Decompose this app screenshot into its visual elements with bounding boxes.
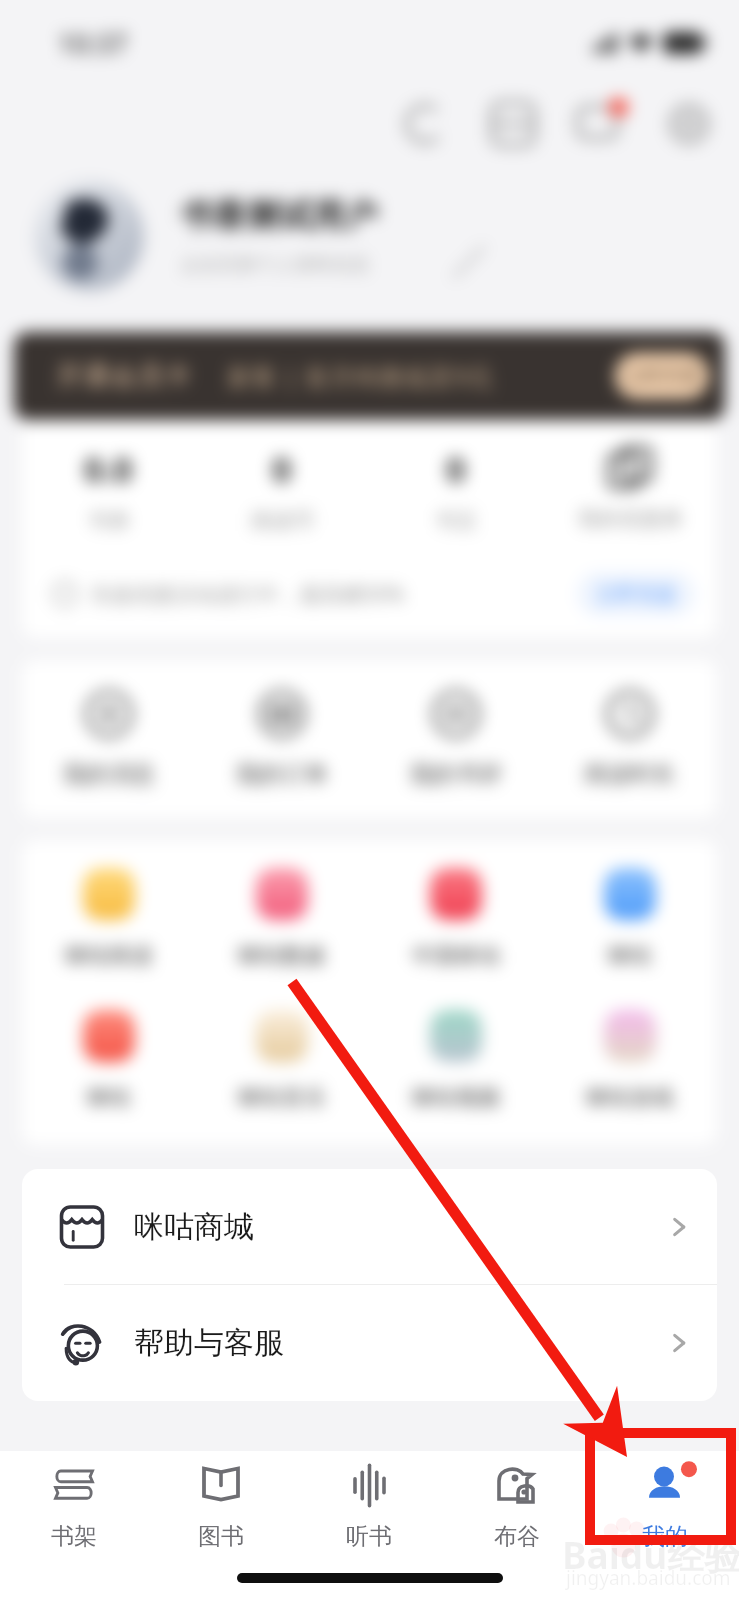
staticText: 我的: [642, 1522, 688, 1551]
staticText: 0.0: [84, 446, 133, 492]
staticText: 咪咕: [87, 1084, 131, 1112]
staticText: 我的书评: [410, 760, 502, 789]
button[interactable]: 咪咕视频: [369, 1010, 543, 1112]
button[interactable]: 咪咕音乐: [195, 1010, 369, 1112]
button[interactable]: 帮助与客服: [22, 1285, 717, 1401]
staticText: Baidu经验: [562, 1529, 739, 1580]
button[interactable]: 书架: [0, 1451, 147, 1555]
button[interactable]: 我的优惠券: [543, 448, 717, 532]
staticText: 布谷: [494, 1522, 540, 1551]
staticText: 书香测试用户: [180, 195, 378, 237]
staticText: 点击完善个人资料信息: [180, 253, 370, 277]
staticText: 咪咕阅读: [65, 942, 153, 970]
button[interactable]: Scan: [469, 86, 557, 162]
button[interactable]: 咪咕阅读: [22, 868, 195, 970]
staticText: 阅读币: [251, 508, 314, 534]
button[interactable]: Messages: [557, 86, 645, 162]
button[interactable]: 我的订单: [195, 690, 369, 789]
button[interactable]: 开通会员卡: [14, 332, 725, 420]
staticText: 中国移动: [412, 942, 500, 970]
staticText: 我的消息: [63, 760, 155, 789]
button[interactable]: 咪咕: [543, 868, 717, 970]
staticText: 书豆: [435, 508, 477, 534]
button[interactable]: 书香测试用户: [0, 162, 739, 310]
button[interactable]: 咪咕商城: [22, 1169, 717, 1284]
button[interactable]: 中国移动: [369, 868, 543, 970]
button[interactable]: 阅读时长: [543, 690, 717, 789]
button[interactable]: Night mode: [381, 86, 469, 162]
button[interactable]: 咪咕游戏: [543, 1010, 717, 1112]
button[interactable]: 我的书评: [369, 690, 543, 789]
staticText: 充值优惠活动进行中，最高赠30%: [90, 580, 405, 609]
staticText: 书券: [88, 508, 130, 534]
staticText: 阅读时长: [584, 760, 676, 789]
staticText: 开通会员卡: [56, 359, 191, 393]
staticText: 0: [272, 446, 292, 492]
button[interactable]: 布谷: [443, 1451, 591, 1555]
button[interactable]: 咪咕: [22, 1010, 195, 1112]
staticText: 咪咕游戏: [586, 1084, 674, 1112]
button[interactable]: 充值优惠活动进行中，最高赠30%: [22, 550, 717, 638]
button[interactable]: Settings: [645, 86, 733, 162]
staticText: 新客 | 首月特惠低至9元: [227, 359, 494, 393]
staticText: 0: [446, 446, 466, 492]
button[interactable]: 图书: [147, 1451, 295, 1555]
staticText: jingyan.baidu.com: [566, 1565, 731, 1591]
staticText: 立即开通: [626, 365, 698, 388]
staticText: 立即充值: [596, 582, 676, 607]
staticText: 咪咕: [608, 942, 652, 970]
staticText: 听书: [346, 1522, 392, 1551]
staticText: 我的订单: [236, 760, 328, 789]
staticText: 书架: [51, 1522, 97, 1551]
button[interactable]: 立即充值: [577, 572, 695, 616]
button[interactable]: 我的消息: [22, 690, 195, 789]
button[interactable]: 0: [195, 446, 369, 534]
staticText: 咪咕数媒: [238, 942, 326, 970]
staticText: 图书: [198, 1522, 244, 1551]
button[interactable]: 咪咕数媒: [195, 868, 369, 970]
button[interactable]: 0.0: [22, 446, 195, 534]
staticText: 咪咕视频: [412, 1084, 500, 1112]
staticText: 10:37: [58, 25, 128, 62]
button[interactable]: 听书: [295, 1451, 443, 1555]
staticText: 帮助与客服: [134, 1324, 284, 1362]
button[interactable]: 0: [369, 446, 543, 534]
button[interactable]: 我的: [591, 1451, 739, 1555]
staticText: 我的优惠券: [578, 506, 683, 532]
staticText: 咪咕音乐: [238, 1084, 326, 1112]
staticText: 咪咕商城: [134, 1208, 254, 1246]
button[interactable]: 立即开通: [615, 353, 709, 399]
